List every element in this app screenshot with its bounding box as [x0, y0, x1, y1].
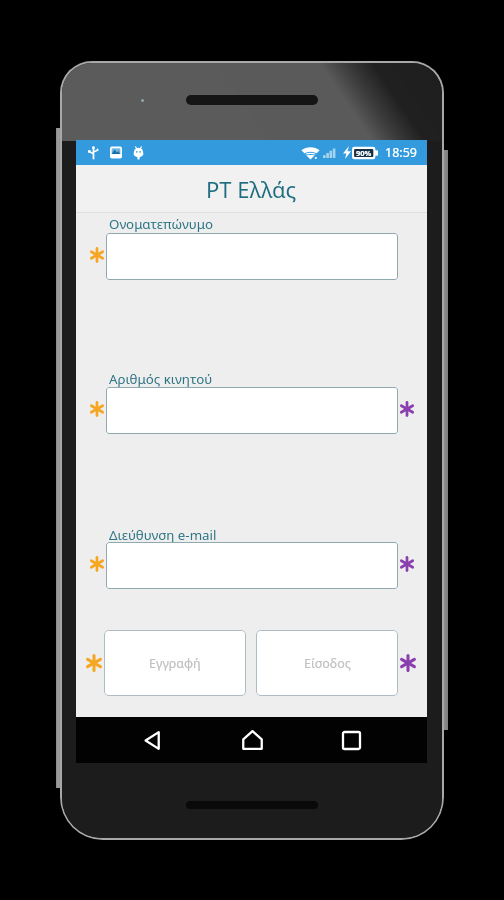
button[interactable]: Αριθμός κινητού [106, 387, 398, 434]
button[interactable]: Home [229, 717, 275, 763]
staticText: 90% [356, 148, 372, 158]
button[interactable]: Είσοδος [256, 630, 398, 696]
button[interactable]: Διεύθυνση e-mail [106, 542, 398, 589]
button[interactable]: Εγγραφή [104, 630, 246, 696]
staticText: Διεύθυνση e-mail [109, 526, 217, 544]
staticText: Εγγραφή [149, 655, 201, 672]
staticText: 18:59 [385, 144, 417, 161]
button[interactable]: Recent apps [328, 717, 374, 763]
staticText: Είσοδος [304, 655, 351, 672]
staticText: Αριθμός κινητού [109, 370, 213, 388]
button[interactable]: Ονοματεπώνυμο [106, 233, 398, 280]
button[interactable]: Back [129, 717, 175, 763]
staticText: Ονοματεπώνυμο [109, 215, 213, 233]
staticText: PT Ελλάς [206, 174, 297, 204]
